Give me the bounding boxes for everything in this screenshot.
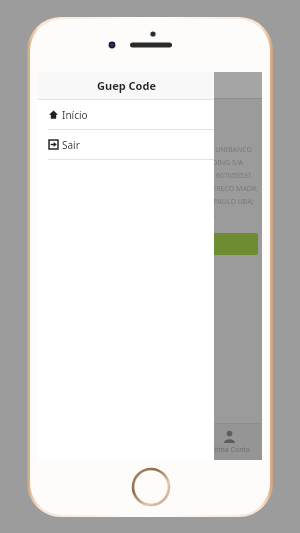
staticText: CNPJ 607050531 [198,171,252,181]
staticText: Início [62,108,88,122]
staticText: ENDERECO MADR; [198,184,259,194]
button[interactable] [198,233,258,255]
button[interactable]: Sair [38,130,214,159]
button[interactable]: Minha Conta [196,424,262,460]
staticText: HOLDING S/A [198,158,243,168]
staticText: ITAU UNIBANCO Tawa [198,145,262,155]
button[interactable]: Início [38,100,214,129]
staticText: TIPO: MASTERCARD [198,210,262,220]
staticText: Sair [62,138,80,152]
staticText: Guep Code [97,78,156,93]
staticText: Minha Conta [208,445,250,455]
staticText: SAO PAULO UBA; [198,197,254,207]
